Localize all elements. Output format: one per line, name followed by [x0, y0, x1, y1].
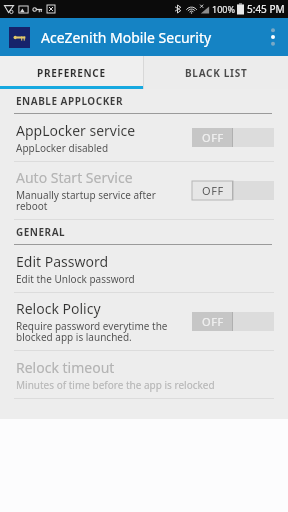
staticText: PREFERENCE	[37, 66, 106, 80]
staticText: ENABLE APPLOCKER	[16, 94, 123, 108]
button[interactable]: More options	[258, 18, 288, 56]
staticText: OFF	[202, 130, 224, 145]
button[interactable]: AppLocker service	[0, 114, 288, 161]
staticText: AceZenith Mobile Security	[41, 28, 212, 47]
staticText: AppLocker disabled	[16, 141, 109, 155]
button[interactable]: Relock timeout	[0, 351, 288, 398]
button[interactable]: Relock Policy	[0, 293, 288, 350]
staticText: Edit Password	[16, 252, 109, 271]
staticText: 5:45 PM	[247, 2, 285, 16]
staticText: OFF	[202, 183, 224, 198]
staticText: Edit the Unlock password	[16, 272, 135, 286]
button[interactable]: PREFERENCE	[0, 56, 143, 89]
staticText: BLACK LIST	[185, 66, 248, 80]
staticText: OFF	[202, 314, 224, 329]
button[interactable]: Toggle off	[192, 128, 274, 147]
button[interactable]: Auto Start Service	[0, 162, 288, 219]
staticText: Manually startup service after reboot	[16, 188, 156, 213]
button[interactable]: BLACK LIST	[144, 56, 288, 89]
staticText: Minutes of time before the app is relock…	[16, 378, 215, 392]
staticText: Require password everytime the blocked a…	[16, 319, 168, 344]
staticText: AppLocker service	[16, 121, 136, 140]
button[interactable]: Toggle off	[192, 181, 274, 200]
button[interactable]: Edit Password	[0, 245, 288, 292]
staticText: GENERAL	[16, 225, 66, 239]
button[interactable]: App icon	[9, 27, 30, 48]
staticText: Auto Start Service	[16, 168, 133, 187]
staticText: Relock Policy	[16, 299, 101, 318]
staticText: Relock timeout	[16, 358, 115, 377]
button[interactable]: Toggle off	[192, 312, 274, 331]
staticText: 100%	[212, 3, 235, 15]
